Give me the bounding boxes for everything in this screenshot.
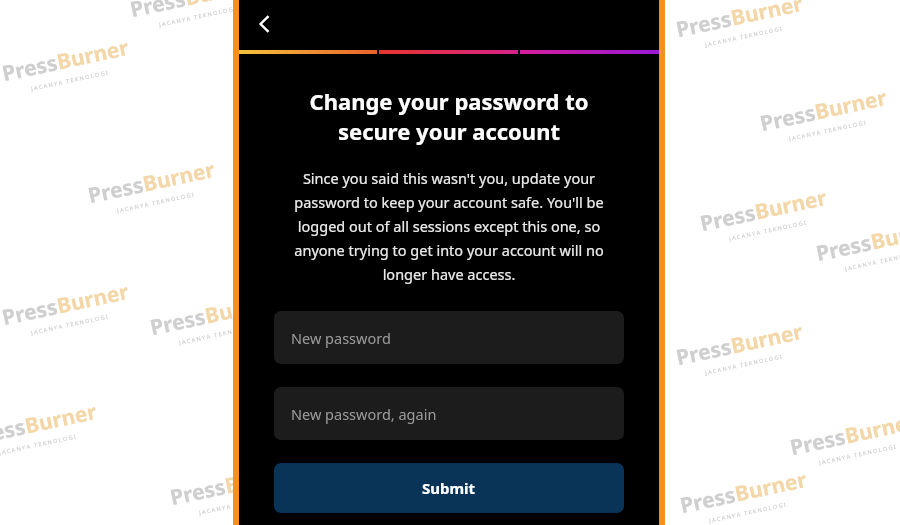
staticText: J A C A N Y A T E K N O L O G I: [158, 4, 237, 28]
staticText: Press: [0, 292, 60, 332]
button[interactable]: New password, again: [274, 387, 624, 440]
staticText: J A C A N Y A T E K N O L O G I: [728, 218, 807, 242]
staticText: J A C A N Y A T E K N O L O G I: [30, 68, 109, 92]
staticText: Press: [673, 4, 734, 44]
staticText: Burner: [182, 0, 260, 12]
staticText: Press: [127, 0, 188, 24]
staticText: Press: [85, 170, 146, 210]
staticText: Burner: [202, 287, 280, 330]
staticText: Press: [813, 228, 874, 268]
button[interactable]: New password: [274, 311, 624, 364]
staticText: Burner: [222, 457, 300, 500]
button[interactable]: Submit: [274, 463, 624, 513]
staticText: Submit: [422, 478, 476, 498]
staticText: Since you said this wasn't you, update y…: [283, 168, 615, 284]
staticText: Burner: [868, 213, 900, 256]
staticText: New password: [291, 328, 391, 348]
staticText: J A C A N Y A T E K N O L O G I: [818, 442, 897, 466]
staticText: J A C A N Y A T E K N O L O G I: [178, 322, 257, 346]
staticText: Press: [0, 48, 60, 88]
staticText: New password, again: [291, 404, 437, 424]
staticText: J A C A N Y A T E K N O L O G I: [704, 24, 783, 48]
staticText: Burner: [752, 183, 830, 226]
staticText: Burner: [22, 397, 100, 440]
staticText: J A C A N Y A T E K N O L O G I: [198, 492, 277, 516]
staticText: Burner: [812, 83, 890, 126]
staticText: Press: [697, 198, 758, 238]
staticText: Burner: [842, 407, 900, 450]
staticText: J A C A N Y A T E K N O L O G I: [0, 432, 77, 456]
staticText: Press: [673, 332, 734, 372]
staticText: Burner: [54, 277, 132, 320]
staticText: Press: [0, 412, 28, 452]
staticText: Burner: [54, 33, 132, 76]
staticText: Burner: [728, 0, 806, 32]
staticText: J A C A N Y A T E K N O L O G I: [30, 312, 109, 336]
staticText: Press: [677, 480, 738, 520]
staticText: J A C A N Y A T E K N O L O G I: [708, 500, 787, 524]
staticText: Burner: [140, 155, 218, 198]
staticText: J A C A N Y A T E K N O L O G I: [704, 352, 783, 376]
staticText: Press: [787, 422, 848, 462]
staticText: Burner: [732, 465, 810, 508]
staticText: Press: [757, 98, 818, 138]
staticText: Change your password to secure your acco…: [283, 86, 615, 146]
staticText: J A C A N Y A T E K N O L O G I: [116, 190, 195, 214]
staticText: J A C A N Y A T E K N O L O G I: [844, 248, 900, 272]
staticText: Press: [167, 472, 228, 512]
staticText: Burner: [728, 317, 806, 360]
button[interactable]: Back: [243, 2, 287, 46]
staticText: J A C A N Y A T E K N O L O G I: [788, 118, 867, 142]
staticText: Press: [147, 302, 208, 342]
